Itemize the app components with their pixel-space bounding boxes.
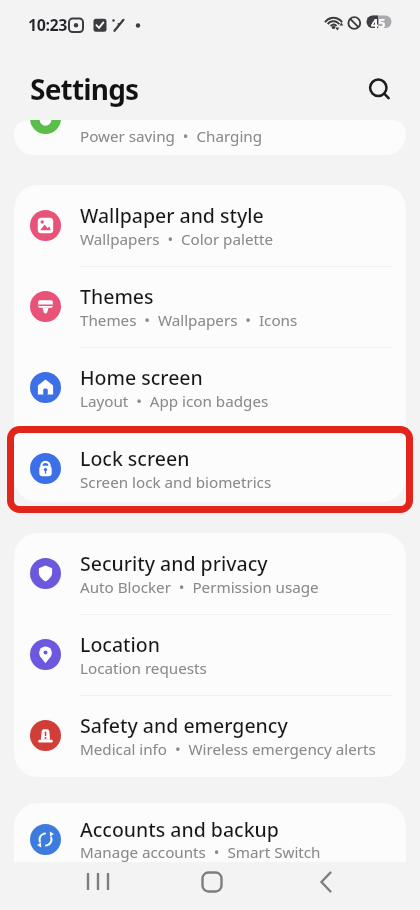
- staticText: Accounts and backup: [80, 816, 279, 843]
- staticText: Screen lock and biometrics: [80, 472, 272, 493]
- staticText: Themes: [80, 283, 154, 310]
- staticText: Security and privacy: [80, 550, 268, 577]
- staticText: Location: [80, 631, 160, 658]
- button[interactable]: [198, 870, 226, 894]
- button[interactable]: Home screen: [14, 347, 406, 428]
- staticText: Layout • App icon badges: [80, 391, 269, 412]
- staticText: Settings: [30, 70, 139, 108]
- button[interactable]: Accounts and backup: [14, 803, 406, 862]
- button[interactable]: Location: [14, 614, 406, 695]
- button[interactable]: Lock screen: [14, 428, 406, 502]
- staticText: Safety and emergency: [80, 712, 288, 739]
- button[interactable]: [313, 870, 339, 894]
- button[interactable]: Security and privacy: [14, 533, 406, 614]
- staticText: 45: [371, 15, 386, 32]
- button[interactable]: Themes: [14, 266, 406, 347]
- staticText: Manage accounts • Smart Switch: [80, 842, 321, 862]
- staticText: Location requests: [80, 658, 207, 679]
- staticText: Themes • Wallpapers • Icons: [80, 310, 298, 331]
- staticText: Home screen: [80, 364, 203, 391]
- staticText: Medical info • Wireless emergency alerts: [80, 739, 376, 760]
- staticText: Auto Blocker • Permission usage: [80, 577, 319, 598]
- staticText: Wallpaper and style: [80, 202, 264, 229]
- button[interactable]: Power saving • Charging: [14, 120, 406, 155]
- staticText: Wallpapers • Color palette: [80, 229, 273, 250]
- staticText: 10:23: [28, 14, 68, 36]
- button[interactable]: [83, 870, 115, 894]
- staticText: Lock screen: [80, 445, 190, 472]
- staticText: Power saving • Charging: [80, 126, 263, 147]
- button[interactable]: Wallpaper and style: [14, 185, 406, 266]
- button[interactable]: [364, 74, 394, 104]
- button[interactable]: Safety and emergency: [14, 695, 406, 776]
